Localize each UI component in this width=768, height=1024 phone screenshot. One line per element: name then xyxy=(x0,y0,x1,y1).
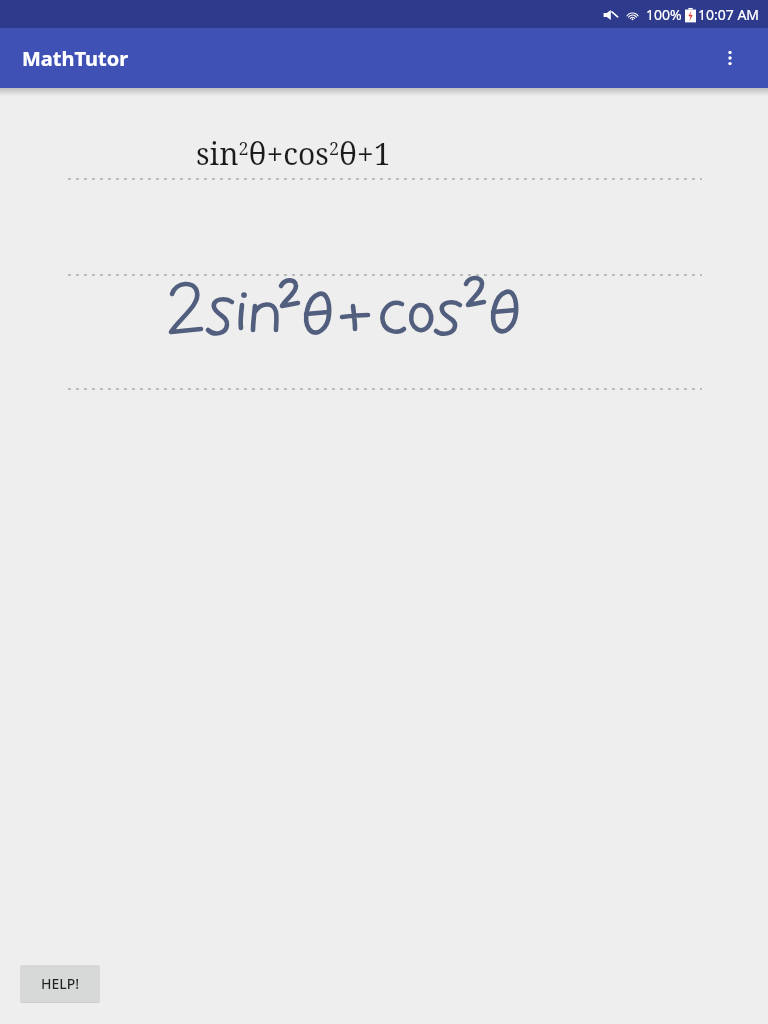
button[interactable]: More options xyxy=(712,40,748,76)
staticText: 10:07 AM xyxy=(698,5,760,24)
staticText: sin2θ+cos2θ+1 xyxy=(196,133,391,174)
staticText: 100% xyxy=(646,5,682,24)
staticText: MathTutor xyxy=(22,45,129,72)
staticText: HELP! xyxy=(41,974,80,993)
button[interactable]: HELP! xyxy=(20,965,100,1002)
